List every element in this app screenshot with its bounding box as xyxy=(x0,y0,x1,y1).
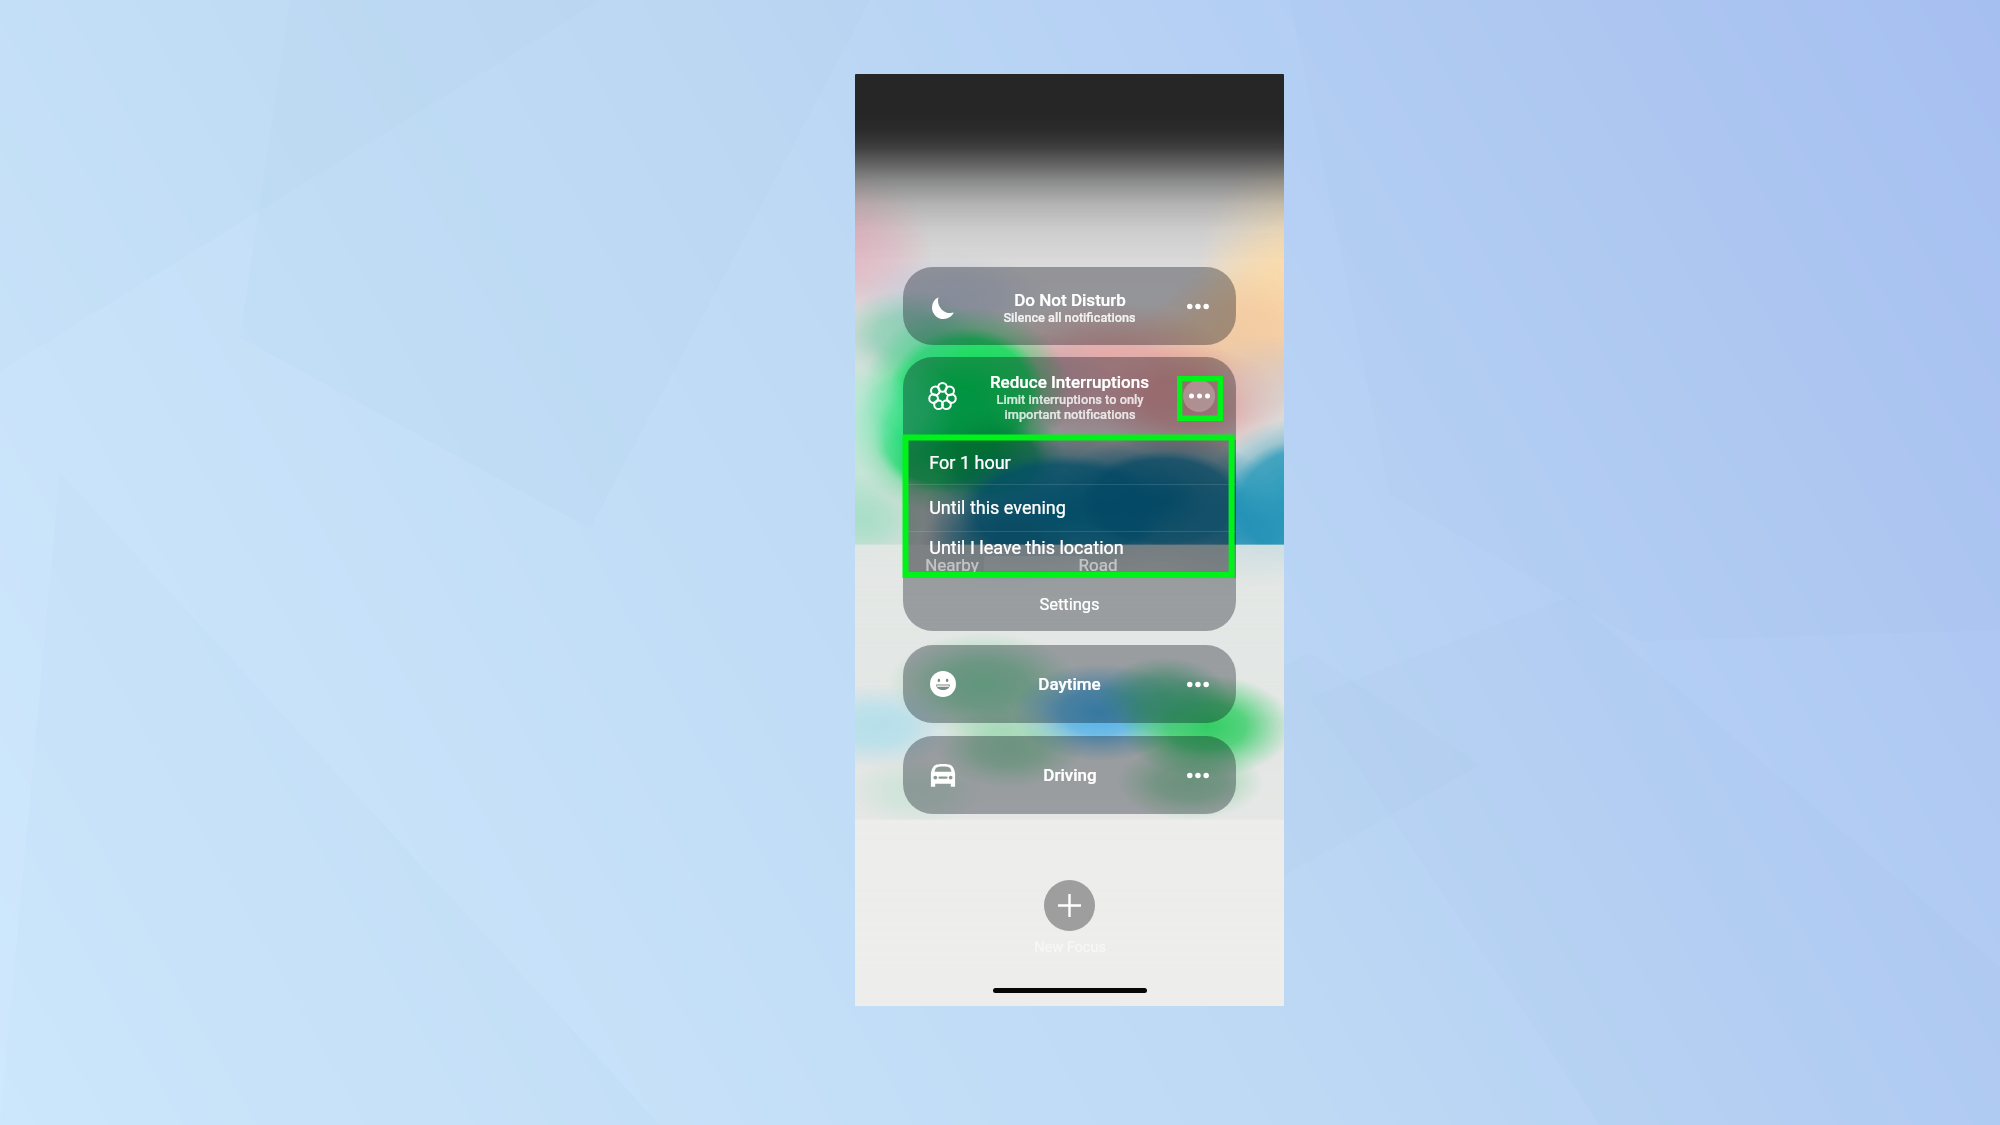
staticText: Do Not Disturb xyxy=(1014,290,1126,310)
staticText: Silence all notifications xyxy=(1003,310,1136,325)
staticText: Limit interruptions to only xyxy=(996,392,1144,407)
staticText: For 1 hour xyxy=(929,452,1011,473)
staticText: important notifications xyxy=(1004,407,1136,422)
button[interactable]: More options xyxy=(1183,380,1215,412)
button[interactable]: Driving xyxy=(903,736,1236,814)
staticText: New Focus xyxy=(1034,939,1106,956)
button[interactable]: Reduce Interruptions xyxy=(903,357,1236,435)
staticText: Reduce Interruptions xyxy=(990,372,1149,392)
staticText: Nearby xyxy=(925,555,979,575)
staticText: Daytime xyxy=(1038,674,1101,694)
staticText: Road xyxy=(1078,555,1118,575)
button[interactable]: Do Not Disturb xyxy=(903,267,1236,345)
staticText: Until I leave this location xyxy=(929,537,1124,558)
button[interactable]: Until this evening xyxy=(903,484,1236,531)
staticText: Driving xyxy=(1043,765,1097,785)
button[interactable]: Settings xyxy=(903,578,1236,631)
button[interactable]: Until I leave this location xyxy=(903,531,1236,563)
button[interactable]: Daytime xyxy=(903,645,1236,723)
button[interactable]: For 1 hour xyxy=(903,440,1236,484)
staticText: Until this evening xyxy=(929,497,1066,518)
button[interactable]: New Focus xyxy=(1044,880,1095,931)
staticText: Settings xyxy=(1039,595,1100,614)
